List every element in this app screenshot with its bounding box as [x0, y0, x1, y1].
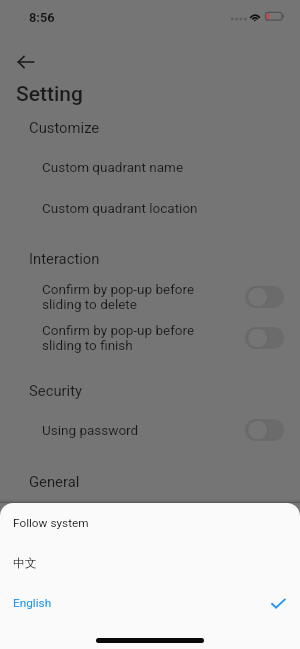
- staticText: Confirm by pop-up before sliding to dele…: [42, 281, 245, 313]
- staticText: 中文: [13, 556, 286, 571]
- button[interactable]: Back: [6, 42, 46, 82]
- staticText: General: [29, 473, 80, 490]
- button[interactable]: Custom quadrant name: [0, 149, 300, 185]
- button[interactable]: Confirm by pop-up before sliding to dele…: [0, 276, 300, 318]
- staticText: Setting: [16, 82, 83, 107]
- button[interactable]: Confirm by pop-up before sliding to fini…: [0, 317, 300, 359]
- staticText: Custom quadrant name: [42, 159, 184, 175]
- button[interactable]: 中文: [0, 543, 300, 583]
- staticText: Using password: [42, 422, 245, 438]
- button[interactable]: Using password: [0, 409, 300, 451]
- staticText: Security: [29, 382, 82, 399]
- staticText: Customize: [29, 119, 100, 136]
- button[interactable]: English: [0, 583, 300, 623]
- staticText: English: [13, 596, 271, 610]
- staticText: 8:56: [29, 10, 55, 25]
- staticText: Custom quadrant location: [42, 200, 198, 216]
- button[interactable]: Follow system: [0, 503, 300, 543]
- button[interactable]: Custom quadrant location: [0, 190, 300, 226]
- staticText: Follow system: [13, 516, 286, 530]
- staticText: Confirm by pop-up before sliding to fini…: [42, 322, 245, 354]
- staticText: Interaction: [29, 250, 100, 267]
